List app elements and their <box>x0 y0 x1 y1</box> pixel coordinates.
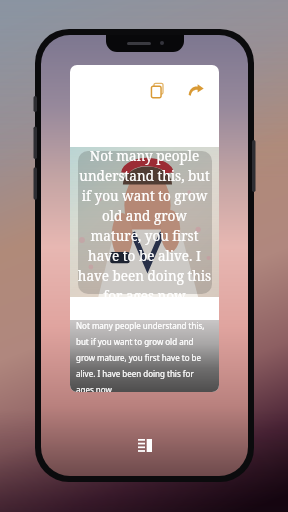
button[interactable]: Share <box>182 76 210 104</box>
staticText: Not many people understand this, but if … <box>75 147 214 297</box>
button[interactable]: Copy <box>144 76 172 104</box>
button[interactable]: View list <box>130 430 160 460</box>
staticText: Not many people understand this, but if … <box>76 320 213 392</box>
